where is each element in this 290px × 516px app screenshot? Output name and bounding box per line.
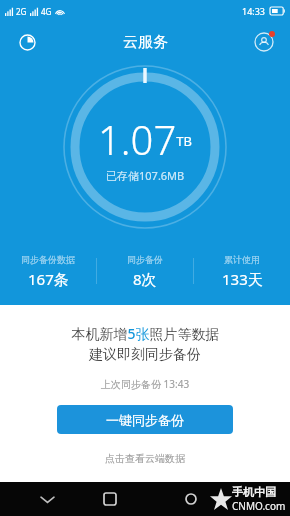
staticText: CNMO.com	[232, 499, 286, 513]
button[interactable]: 累计使用	[194, 250, 290, 292]
staticText: 4G	[41, 6, 52, 17]
button[interactable]: 同步备份	[97, 250, 193, 292]
button[interactable]: 一键同步备份	[57, 405, 233, 434]
staticText: 上次同步备份 13:43	[101, 377, 190, 391]
button[interactable]: Home	[176, 484, 206, 514]
button[interactable]: 同步备份数据	[0, 250, 96, 292]
staticText: 167条	[28, 269, 69, 289]
staticText: 一键同步备份	[106, 412, 184, 428]
staticText: 建议即刻同步备份	[89, 346, 201, 364]
staticText: 同步备份数据	[21, 254, 75, 265]
staticText: 2G	[16, 6, 27, 17]
staticText: 点击查看云端数据	[105, 452, 185, 465]
staticText: 1.07TB	[98, 112, 192, 166]
button[interactable]: Storage usage	[10, 25, 44, 59]
staticText: 同步备份	[127, 254, 163, 265]
staticText: 累计使用	[224, 254, 260, 265]
button[interactable]: Back	[32, 484, 62, 514]
staticText: 云服务	[123, 33, 168, 52]
staticText: 8次	[133, 269, 157, 289]
button[interactable]: 点击查看云端数据	[93, 448, 197, 469]
staticText: 133天	[222, 269, 263, 289]
button[interactable]: Recents	[95, 484, 125, 514]
button[interactable]: Account	[247, 25, 281, 59]
staticText: 已存储107.6MB	[106, 168, 185, 183]
staticText: 14:33	[242, 5, 266, 17]
staticText: 手机中国	[232, 485, 276, 499]
staticText: 本机新增5张照片等数据	[71, 324, 220, 343]
